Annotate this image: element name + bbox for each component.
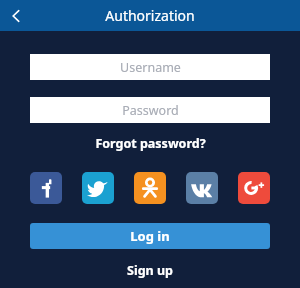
button[interactable]: Log in [30,223,270,249]
button[interactable]: Sign in with VK [186,172,218,204]
staticText: Forgot password? [95,135,206,152]
staticText: Sign up [127,262,173,279]
button[interactable]: Sign in with Google Plus [238,172,270,204]
button[interactable]: Forgot password? [30,135,270,152]
staticText: Log in [130,227,170,245]
button[interactable]: Back [0,0,32,31]
button[interactable]: Username [30,54,270,80]
staticText: Password [122,102,179,119]
staticText: Authorization [105,6,195,25]
button[interactable]: Sign in with Odnoklassniki [134,172,166,204]
button[interactable]: Sign up [30,262,270,279]
staticText: Username [120,59,181,76]
button[interactable]: Password [30,97,270,123]
button[interactable]: Sign in with Twitter [82,172,114,204]
button[interactable]: Sign in with Facebook [30,172,62,204]
